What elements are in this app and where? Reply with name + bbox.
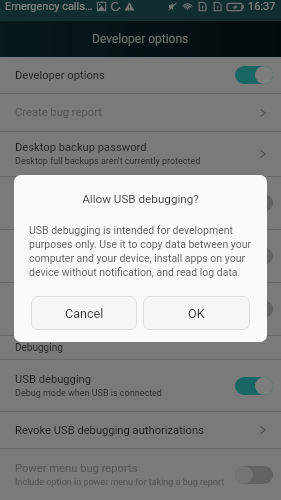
- button[interactable]: Stay awake: [0, 177, 281, 229]
- button[interactable]: Power menu bug reports: [0, 449, 281, 500]
- button[interactable]: OK: [143, 296, 250, 330]
- button[interactable]: Create bug report: [0, 94, 281, 131]
- staticText: Capture all bluetooth HCI packets in a f…: [15, 258, 180, 269]
- staticText: Desktop backup password: [15, 141, 147, 154]
- staticText: OK: [188, 306, 205, 321]
- staticText: OEM unlocking: [15, 296, 90, 309]
- staticText: Allow USB debugging?: [14, 192, 267, 206]
- button[interactable]: USB debugging: [0, 360, 281, 411]
- staticText: Cancel: [65, 306, 104, 321]
- button[interactable]: Cancel: [31, 296, 137, 330]
- staticText: Revoke USB debugging authorizations: [15, 424, 204, 437]
- staticText: Enable Bluetooth HCI snoop log: [15, 243, 173, 256]
- staticText: Desktop full backups aren't currently pr…: [15, 156, 201, 167]
- staticText: Emergency calls…: [5, 0, 93, 13]
- button[interactable]: Desktop backup password: [0, 132, 281, 176]
- staticText: Create bug report: [15, 106, 102, 119]
- button[interactable]: OEM unlocking: [0, 283, 281, 335]
- staticText: Power menu bug reports: [15, 462, 138, 475]
- staticText: Developer options: [15, 69, 105, 82]
- staticText: 16:37: [248, 0, 276, 13]
- staticText: USB debugging: [15, 373, 92, 386]
- staticText: USB debugging is intended for developmen…: [29, 224, 253, 279]
- staticText: Allow the bootloader to be unlocked: [15, 311, 159, 322]
- button[interactable]: Enable Bluetooth HCI snoop log: [0, 230, 281, 282]
- button[interactable]: Developer options: [0, 57, 281, 93]
- staticText: Debugging: [15, 342, 63, 354]
- button[interactable]: Revoke USB debugging authorizations: [0, 412, 281, 448]
- staticText: Include option in power menu for taking …: [15, 477, 225, 488]
- staticText: Developer options: [92, 32, 189, 46]
- staticText: Debug mode when USB is connected: [15, 388, 162, 399]
